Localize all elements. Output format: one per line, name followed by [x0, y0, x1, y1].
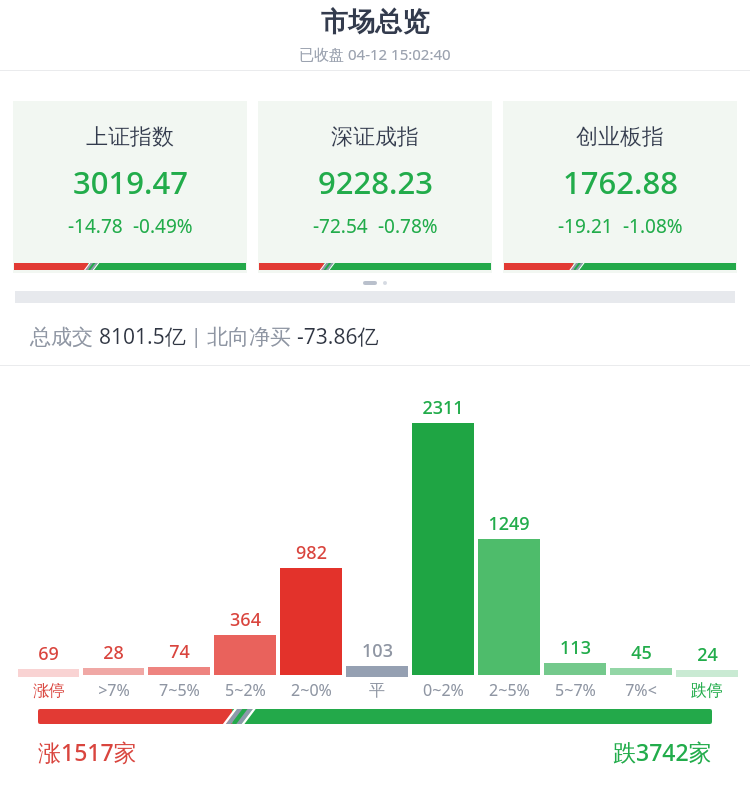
staticText: -19.21 — [558, 213, 613, 239]
staticText: -0.49% — [133, 213, 193, 239]
staticText: 深证成指 — [331, 123, 419, 151]
button[interactable]: 69 — [18, 641, 79, 701]
staticText: 7%< — [625, 679, 657, 701]
staticText: 2311 — [422, 395, 464, 420]
button[interactable]: 364 — [214, 607, 276, 701]
staticText: -73.86亿 — [297, 322, 379, 351]
staticText: 上证指数 — [86, 123, 174, 151]
button[interactable]: 跌3742家 — [613, 736, 712, 767]
button[interactable]: 上证指数 — [13, 101, 247, 273]
staticText: -1.08% — [623, 213, 683, 239]
staticText: 69 — [38, 641, 59, 666]
button[interactable]: 74 — [148, 639, 210, 701]
button[interactable]: 982 — [280, 540, 342, 701]
staticText: 已收盘 — [299, 44, 348, 64]
staticText: 45 — [631, 640, 652, 665]
staticText: 103 — [362, 638, 393, 663]
staticText: 创业板指 — [576, 123, 664, 151]
button[interactable]: 45 — [610, 640, 672, 701]
staticText: 5~2% — [225, 679, 266, 701]
staticText: 1249 — [488, 511, 530, 536]
staticText: 3019.47 — [73, 161, 188, 203]
staticText: 113 — [560, 635, 591, 660]
button[interactable]: 113 — [544, 635, 606, 701]
staticText: 2~5% — [489, 679, 530, 701]
staticText: 1762.88 — [563, 161, 678, 203]
staticText: 28 — [103, 640, 124, 665]
staticText: 364 — [230, 607, 261, 632]
staticText: 平 — [369, 681, 385, 701]
staticText: 8101.5亿 — [99, 322, 186, 351]
staticText: >7% — [98, 679, 130, 701]
staticText: 04-12 15:02:40 — [348, 44, 451, 64]
button[interactable]: 总成交 — [30, 319, 720, 353]
button[interactable]: 1249 — [478, 511, 540, 701]
button[interactable]: 28 — [83, 640, 144, 701]
staticText: 跌停 — [691, 681, 723, 701]
staticText: 0~2% — [423, 679, 464, 701]
button[interactable]: 2311 — [412, 395, 474, 701]
staticText: 涨停 — [33, 681, 65, 701]
staticText: -0.78% — [378, 213, 438, 239]
button[interactable]: 深证成指 — [258, 101, 492, 273]
button[interactable]: 创业板指 — [503, 101, 737, 273]
staticText: 982 — [296, 540, 327, 565]
staticText: 总成交 — [30, 322, 99, 351]
button[interactable]: 103 — [346, 638, 408, 701]
staticText: 74 — [169, 639, 190, 664]
staticText: 2~0% — [291, 679, 332, 701]
button[interactable]: 24 — [676, 642, 738, 701]
staticText: 7~5% — [159, 679, 200, 701]
staticText: 市场总览 — [321, 5, 429, 39]
staticText: 5~7% — [555, 679, 596, 701]
button[interactable]: 涨1517家 — [38, 736, 137, 767]
staticText: 9228.23 — [318, 161, 433, 203]
staticText: 北向净买 — [207, 322, 297, 351]
staticText: -14.78 — [68, 213, 123, 239]
staticText: | — [186, 323, 207, 349]
staticText: 24 — [697, 642, 718, 667]
staticText: -72.54 — [313, 213, 368, 239]
